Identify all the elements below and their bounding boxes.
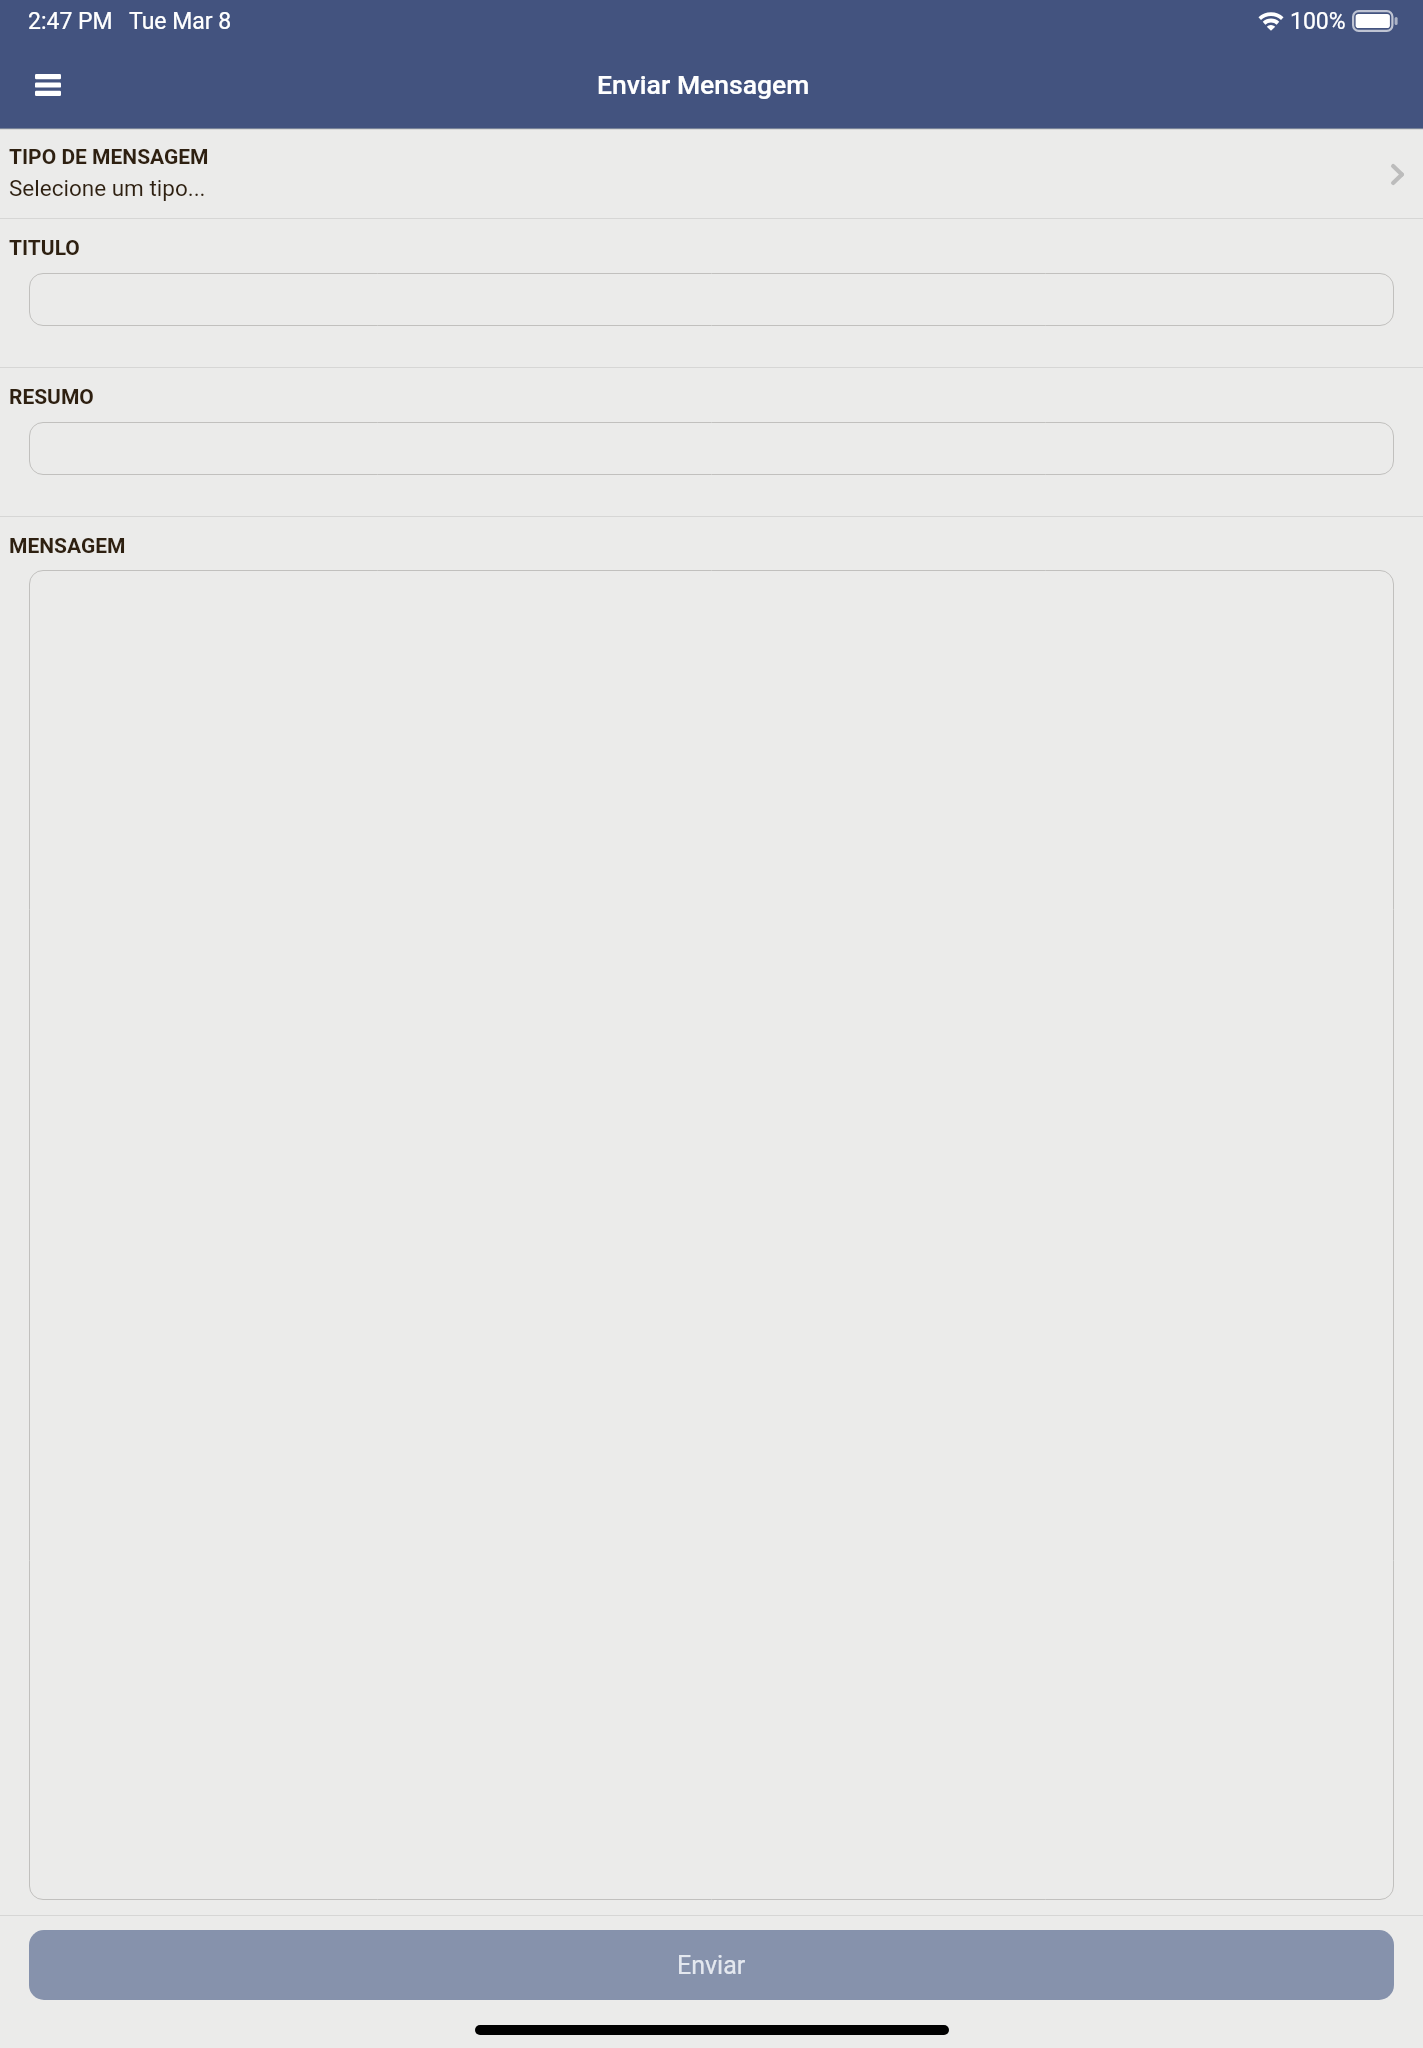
staticText: RESUMO: [9, 385, 94, 410]
button[interactable]: TIPO DE MENSAGEM: [0, 130, 1423, 218]
button[interactable]: TITULO: [29, 273, 1394, 326]
staticText: TITULO: [9, 236, 80, 261]
staticText: 100%: [1290, 8, 1346, 35]
staticText: Tue Mar 8: [129, 8, 232, 35]
staticText: TIPO DE MENSAGEM: [9, 145, 209, 170]
staticText: 2:47 PM: [28, 8, 113, 35]
button[interactable]: Menu: [26, 63, 70, 107]
staticText: MENSAGEM: [9, 534, 126, 559]
button[interactable]: RESUMO: [29, 422, 1394, 475]
staticText: Enviar: [677, 1951, 746, 1980]
staticText: Enviar Mensagem: [597, 69, 810, 100]
button[interactable]: Enviar: [29, 1930, 1394, 2000]
staticText: Selecione um tipo...: [9, 175, 206, 201]
